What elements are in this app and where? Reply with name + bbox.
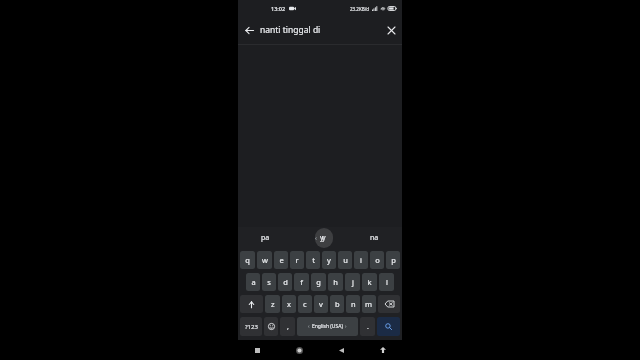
- staticText: t: [312, 255, 315, 265]
- button[interactable]: j: [345, 273, 360, 291]
- staticText: na: [370, 233, 379, 243]
- button[interactable]: u: [338, 251, 352, 269]
- button[interactable]: Back: [328, 340, 354, 360]
- staticText: a: [251, 277, 256, 287]
- staticText: ?123: [245, 323, 258, 331]
- button[interactable]: g: [311, 273, 326, 291]
- staticText: l: [386, 277, 388, 287]
- staticText: ›: [345, 323, 347, 330]
- staticText: v: [319, 299, 323, 309]
- button[interactable]: ?123: [240, 317, 262, 336]
- button[interactable]: y: [322, 251, 336, 269]
- button[interactable]: k: [362, 273, 377, 291]
- button[interactable]: ‹: [292, 227, 347, 249]
- button[interactable]: c: [298, 295, 312, 313]
- staticText: ‹: [308, 323, 310, 330]
- button[interactable]: pa: [238, 227, 292, 249]
- staticText: y: [320, 233, 324, 243]
- button[interactable]: .: [360, 317, 375, 336]
- staticText: x: [287, 299, 291, 309]
- button[interactable]: x: [282, 295, 296, 313]
- button[interactable]: p: [386, 251, 400, 269]
- button[interactable]: t: [306, 251, 320, 269]
- button[interactable]: Hide keyboard: [370, 340, 396, 360]
- staticText: h: [333, 277, 338, 287]
- staticText: ‹: [315, 234, 317, 242]
- staticText: f: [300, 277, 303, 287]
- button[interactable]: Backspace: [378, 295, 400, 313]
- button[interactable]: Shift: [240, 295, 263, 313]
- staticText: r: [295, 255, 299, 265]
- staticText: .: [367, 322, 369, 332]
- button[interactable]: s: [262, 273, 276, 291]
- staticText: y: [322, 233, 326, 243]
- staticText: y: [327, 255, 331, 265]
- staticText: i: [360, 255, 362, 265]
- button[interactable]: h: [328, 273, 343, 291]
- button[interactable]: q: [240, 251, 255, 269]
- button[interactable]: ‹: [297, 317, 358, 336]
- button[interactable]: n: [346, 295, 360, 313]
- staticText: nanti tinggal di: [260, 24, 321, 36]
- staticText: q: [245, 255, 250, 265]
- staticText: ,: [287, 322, 289, 332]
- staticText: b: [335, 299, 340, 309]
- button[interactable]: ,: [280, 317, 295, 336]
- button[interactable]: d: [278, 273, 292, 291]
- staticText: 13:02: [271, 5, 286, 12]
- staticText: d: [283, 277, 288, 287]
- staticText: u: [343, 255, 348, 265]
- staticText: o: [375, 255, 380, 265]
- staticText: n: [351, 299, 356, 309]
- staticText: z: [271, 299, 275, 309]
- button[interactable]: Search: [377, 317, 400, 336]
- staticText: s: [267, 277, 271, 287]
- button[interactable]: z: [265, 295, 280, 313]
- staticText: pa: [261, 233, 270, 243]
- staticText: j: [352, 277, 354, 287]
- button[interactable]: a: [246, 273, 260, 291]
- staticText: g: [316, 277, 321, 287]
- button[interactable]: o: [370, 251, 384, 269]
- staticText: m: [365, 299, 373, 309]
- staticText: w: [262, 255, 268, 265]
- button[interactable]: Clear: [380, 19, 402, 41]
- button[interactable]: w: [257, 251, 272, 269]
- button[interactable]: Back: [238, 19, 260, 41]
- staticText: English (USA): [312, 323, 343, 330]
- button[interactable]: r: [290, 251, 304, 269]
- button[interactable]: f: [294, 273, 309, 291]
- button[interactable]: v: [314, 295, 328, 313]
- button[interactable]: Home: [286, 340, 312, 360]
- button[interactable]: Recents: [244, 340, 270, 360]
- button[interactable]: i: [354, 251, 368, 269]
- staticText: p: [391, 255, 396, 265]
- button[interactable]: e: [274, 251, 288, 269]
- staticText: c: [303, 299, 307, 309]
- button[interactable]: b: [330, 295, 344, 313]
- button[interactable]: m: [362, 295, 376, 313]
- staticText: 23.2KB/d: [350, 6, 370, 12]
- button[interactable]: l: [379, 273, 394, 291]
- button[interactable]: na: [347, 227, 402, 249]
- button[interactable]: Emoji: [264, 317, 278, 336]
- button[interactable]: nanti tinggal di: [260, 16, 380, 44]
- staticText: k: [367, 277, 372, 287]
- staticText: e: [279, 255, 284, 265]
